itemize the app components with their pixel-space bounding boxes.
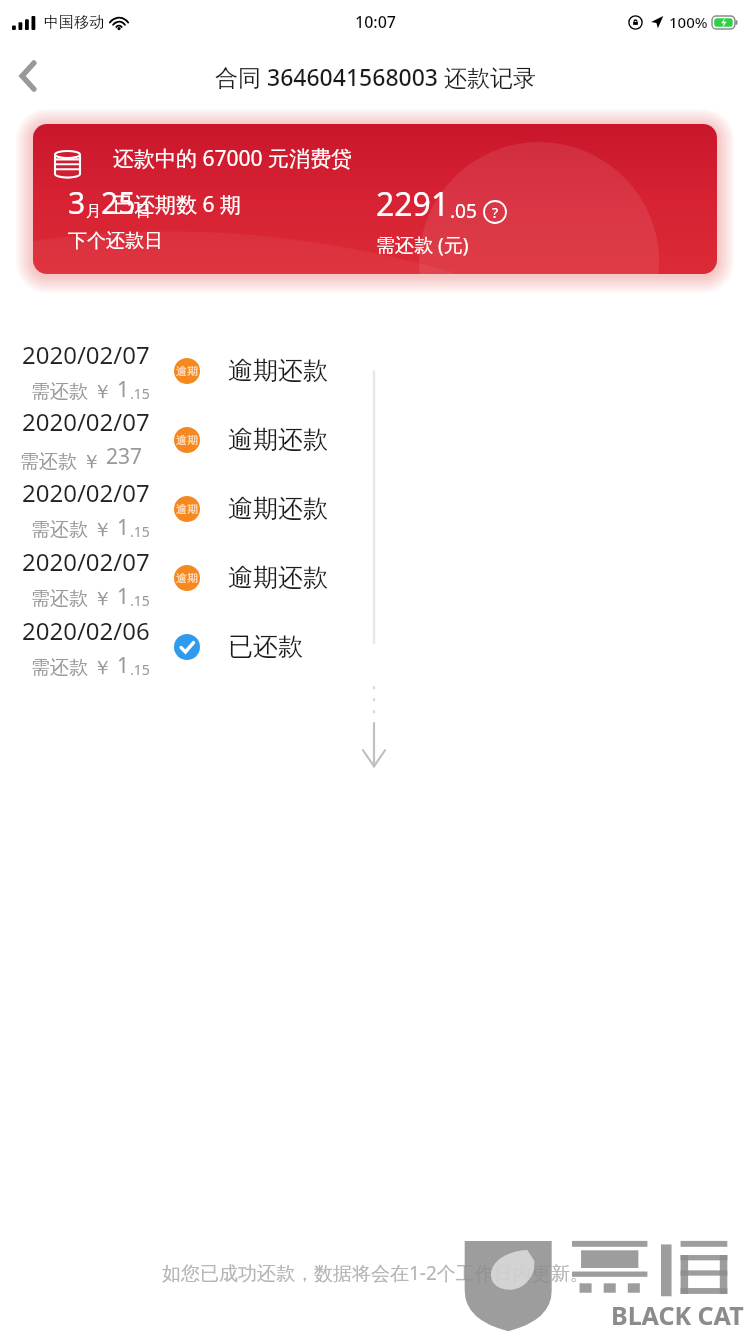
button[interactable]: 2020/02/07 (0, 336, 750, 405)
button[interactable]: 2020/02/07 (0, 474, 750, 543)
staticText: 需还款 (元) (376, 232, 469, 258)
staticText: 1 (117, 513, 130, 542)
button[interactable]: 2020/02/07 (0, 543, 750, 612)
staticText: 需还款 ￥ (31, 654, 117, 680)
staticText: 2020/02/06 (22, 614, 150, 647)
staticText: .15 (130, 384, 150, 403)
staticText: 需还款 ￥ (31, 585, 117, 611)
button[interactable]: 还款中的 67000 元消费贷 (33, 124, 717, 274)
staticText: 逾期还款 (228, 424, 328, 455)
staticText: 逾期 (176, 433, 198, 447)
staticText: 月 (86, 202, 101, 221)
staticText: 逾期还款 (228, 493, 328, 524)
staticText: 逾期 (176, 364, 198, 378)
staticText: 已还款 (228, 631, 303, 662)
staticText: 2291 (376, 182, 450, 226)
staticText: 还款中的 67000 元消费贷 (113, 144, 352, 173)
staticText: 2020/02/07 (22, 545, 150, 578)
staticText: BLACK CAT (611, 1298, 744, 1332)
staticText: 3 (68, 182, 86, 223)
staticText: .15 (130, 522, 150, 541)
staticText: 25 (101, 182, 136, 223)
staticText: 2372 (106, 442, 150, 474)
button[interactable]: 2020/02/06 (0, 612, 750, 681)
staticText: 需还款 ￥ (20, 448, 106, 474)
staticText: 逾期还款 (228, 355, 328, 386)
staticText: 日 (136, 202, 151, 221)
staticText: 2020/02/07 (22, 405, 150, 438)
staticText: 1 (117, 375, 130, 404)
staticText: 下个还款日 (68, 229, 163, 253)
staticText: 合同 3646041568003 还款记录 (215, 61, 536, 92)
staticText: 2020/02/07 (22, 338, 150, 371)
staticText: 逾期 (176, 502, 198, 516)
staticText: 逾期 (176, 571, 198, 585)
staticText: 1 (117, 582, 130, 611)
button[interactable]: 2020/02/07 (0, 405, 750, 474)
staticText: .15 (130, 660, 150, 679)
staticText: 需还款 ￥ (31, 516, 117, 542)
staticText: .15 (130, 591, 150, 610)
staticText: .05 (450, 198, 477, 224)
staticText: 如您已成功还款，数据将会在1-2个工作日内更新。 (162, 1260, 589, 1286)
staticText: 1 (117, 651, 130, 680)
button[interactable]: Help (483, 200, 507, 224)
staticText: 100% (669, 12, 708, 32)
staticText: 已还期数 6 期 (113, 190, 241, 219)
staticText: 2020/02/07 (22, 476, 150, 509)
staticText: 需还款 ￥ (31, 378, 117, 404)
staticText: 10:07 (355, 11, 396, 33)
button[interactable]: Back (0, 48, 56, 104)
staticText: 逾期还款 (228, 562, 328, 593)
staticText: 中国移动 (44, 13, 104, 32)
staticText: ? (492, 203, 499, 222)
